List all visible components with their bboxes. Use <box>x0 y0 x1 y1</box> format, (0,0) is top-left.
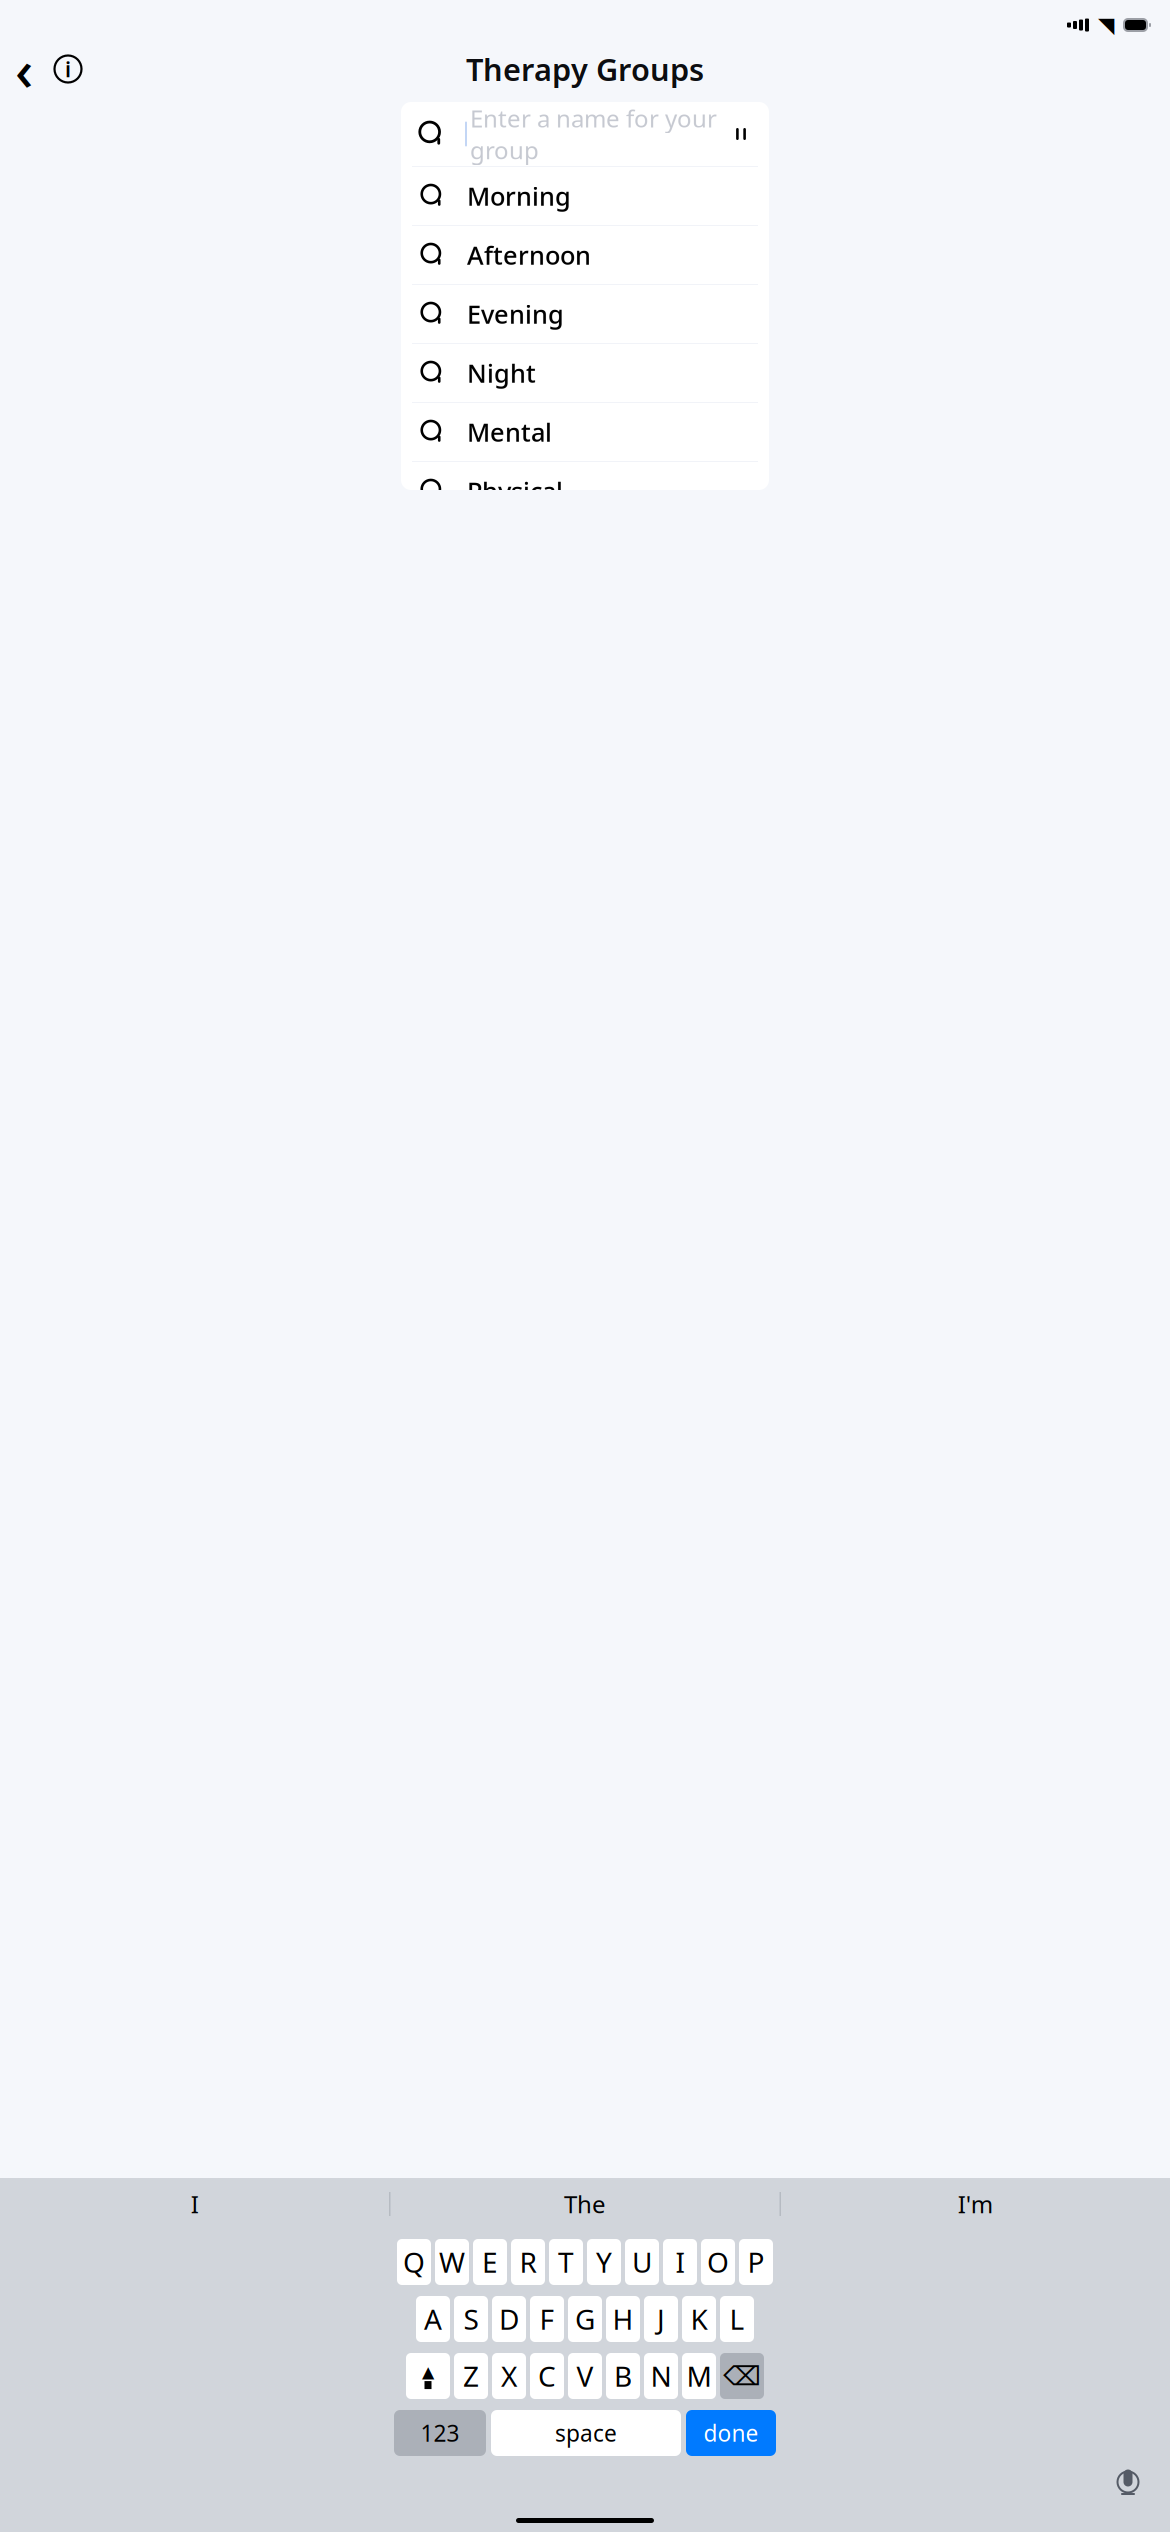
button[interactable]: Delete <box>720 2353 764 2399</box>
button[interactable]: L <box>720 2296 754 2342</box>
staticText: P <box>747 2243 764 2281</box>
button[interactable]: done <box>686 2410 776 2456</box>
staticText: R <box>519 2243 536 2281</box>
button[interactable]: Information <box>50 46 86 92</box>
button[interactable]: C <box>530 2353 564 2399</box>
staticText: O <box>707 2243 729 2281</box>
staticText: ▲ <box>422 2363 434 2381</box>
button[interactable]: Y <box>587 2239 621 2285</box>
staticText: 123 <box>420 2418 459 2448</box>
staticText: B <box>614 2357 632 2395</box>
staticText: G <box>575 2300 595 2338</box>
button[interactable]: S <box>454 2296 488 2342</box>
staticText: Z <box>463 2357 479 2395</box>
button[interactable]: O <box>701 2239 735 2285</box>
button[interactable]: Night <box>401 344 769 402</box>
button[interactable]: I'm <box>781 2178 1170 2230</box>
staticText: Therapy Groups <box>466 49 704 89</box>
button[interactable]: Evening <box>401 285 769 343</box>
button[interactable]: Afternoon <box>401 226 769 284</box>
staticText: i <box>65 55 71 83</box>
button[interactable]: K <box>682 2296 716 2342</box>
button[interactable]: U <box>625 2239 659 2285</box>
button[interactable]: N <box>644 2353 678 2399</box>
button[interactable]: P <box>739 2239 773 2285</box>
staticText: ◥ <box>1098 13 1114 37</box>
staticText: N <box>650 2357 671 2395</box>
staticText: H <box>612 2300 633 2338</box>
button[interactable]: 123 <box>394 2410 486 2456</box>
staticText: L <box>729 2300 744 2338</box>
button[interactable]: I <box>0 2178 389 2230</box>
staticText: M <box>686 2357 711 2395</box>
staticText: ⌫ <box>723 2361 761 2391</box>
staticText: D <box>499 2300 519 2338</box>
button[interactable]: A <box>416 2296 450 2342</box>
button[interactable]: H <box>606 2296 640 2342</box>
button[interactable]: B <box>606 2353 640 2399</box>
button[interactable]: Physical <box>401 462 769 520</box>
staticText: C <box>538 2357 556 2395</box>
button[interactable]: I <box>663 2239 697 2285</box>
button[interactable]: R <box>511 2239 545 2285</box>
staticText: W <box>439 2243 465 2281</box>
staticText: Enter a name for your group <box>470 102 717 166</box>
button[interactable]: Dictate <box>1106 2460 1150 2504</box>
staticText: J <box>657 2300 665 2338</box>
staticText: X <box>501 2357 517 2395</box>
button[interactable]: Z <box>454 2353 488 2399</box>
staticText: S <box>463 2300 478 2338</box>
button[interactable]: T <box>549 2239 583 2285</box>
staticText: Morning <box>467 179 571 213</box>
button[interactable]: M <box>682 2353 716 2399</box>
staticText: E <box>482 2243 498 2281</box>
button[interactable]: F <box>530 2296 564 2342</box>
staticText: Y <box>596 2243 612 2281</box>
staticText: A <box>424 2300 442 2338</box>
staticText: U <box>632 2243 652 2281</box>
button[interactable]: Enter a name for your group <box>401 102 769 166</box>
staticText: Q <box>403 2243 425 2281</box>
button[interactable]: Morning <box>401 167 769 225</box>
staticText: K <box>690 2300 707 2338</box>
button[interactable]: V <box>568 2353 602 2399</box>
staticText: done <box>703 2418 758 2448</box>
staticText: I'm <box>958 2188 993 2220</box>
button[interactable]: The <box>390 2178 780 2230</box>
button[interactable]: X <box>492 2353 526 2399</box>
staticText: T <box>558 2243 574 2281</box>
staticText: Mental <box>467 415 552 449</box>
button[interactable]: G <box>568 2296 602 2342</box>
button[interactable]: E <box>473 2239 507 2285</box>
button[interactable]: Back <box>10 46 38 92</box>
staticText: Evening <box>467 297 564 331</box>
staticText: space <box>555 2418 617 2448</box>
button[interactable]: Mental <box>401 403 769 461</box>
staticText: V <box>576 2357 593 2395</box>
staticText: I <box>675 2243 684 2281</box>
button[interactable]: J <box>644 2296 678 2342</box>
button[interactable]: Shift <box>406 2353 450 2399</box>
staticText: F <box>539 2300 554 2338</box>
staticText: ‹ <box>15 32 33 106</box>
staticText: Afternoon <box>467 238 591 272</box>
button[interactable]: Q <box>397 2239 431 2285</box>
button[interactable]: D <box>492 2296 526 2342</box>
staticText: I <box>191 2188 199 2220</box>
button[interactable]: W <box>435 2239 469 2285</box>
staticText: Night <box>467 356 536 390</box>
button[interactable]: space <box>491 2410 681 2456</box>
staticText: Physical <box>467 474 563 508</box>
staticText: The <box>564 2188 606 2220</box>
